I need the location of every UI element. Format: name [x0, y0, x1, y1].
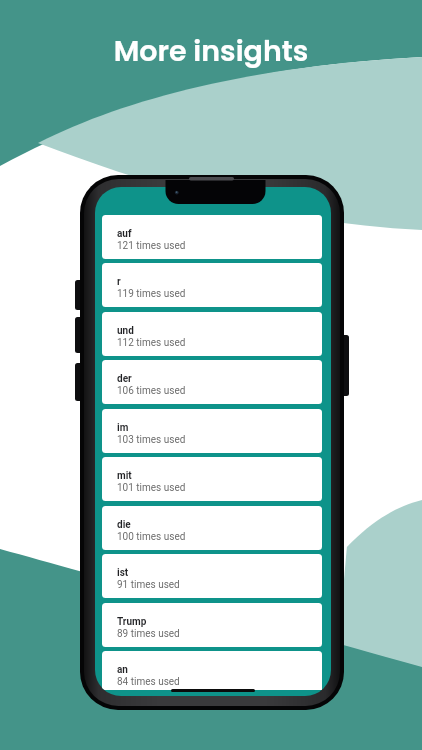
staticText: 112 times used [117, 337, 186, 349]
staticText: die [117, 519, 131, 531]
button[interactable]: r [102, 263, 322, 307]
staticText: 103 times used [117, 434, 186, 446]
staticText: mit [117, 470, 132, 482]
staticText: 84 times used [117, 676, 180, 688]
staticText: 101 times used [117, 482, 186, 494]
button[interactable]: an [102, 651, 322, 690]
button[interactable]: ist [102, 554, 322, 598]
staticText: 91 times used [117, 579, 180, 591]
staticText: und [117, 325, 134, 337]
staticText: an [117, 664, 128, 676]
button[interactable]: im [102, 409, 322, 453]
staticText: auf [117, 228, 132, 240]
staticText: 119 times used [117, 288, 186, 300]
staticText: 121 times used [117, 240, 186, 252]
staticText: Trump [117, 616, 147, 628]
staticText: r [117, 276, 121, 288]
staticText: More insights [0, 31, 422, 71]
button[interactable]: der [102, 360, 322, 404]
button[interactable]: mit [102, 457, 322, 501]
staticText: im [117, 422, 129, 434]
button[interactable]: die [102, 506, 322, 550]
button[interactable]: und [102, 312, 322, 356]
button[interactable]: Trump [102, 603, 322, 647]
button[interactable]: auf [102, 215, 322, 259]
staticText: ist [117, 567, 129, 579]
staticText: 89 times used [117, 628, 180, 640]
staticText: 106 times used [117, 385, 186, 397]
staticText: 100 times used [117, 531, 186, 543]
staticText: der [117, 373, 132, 385]
